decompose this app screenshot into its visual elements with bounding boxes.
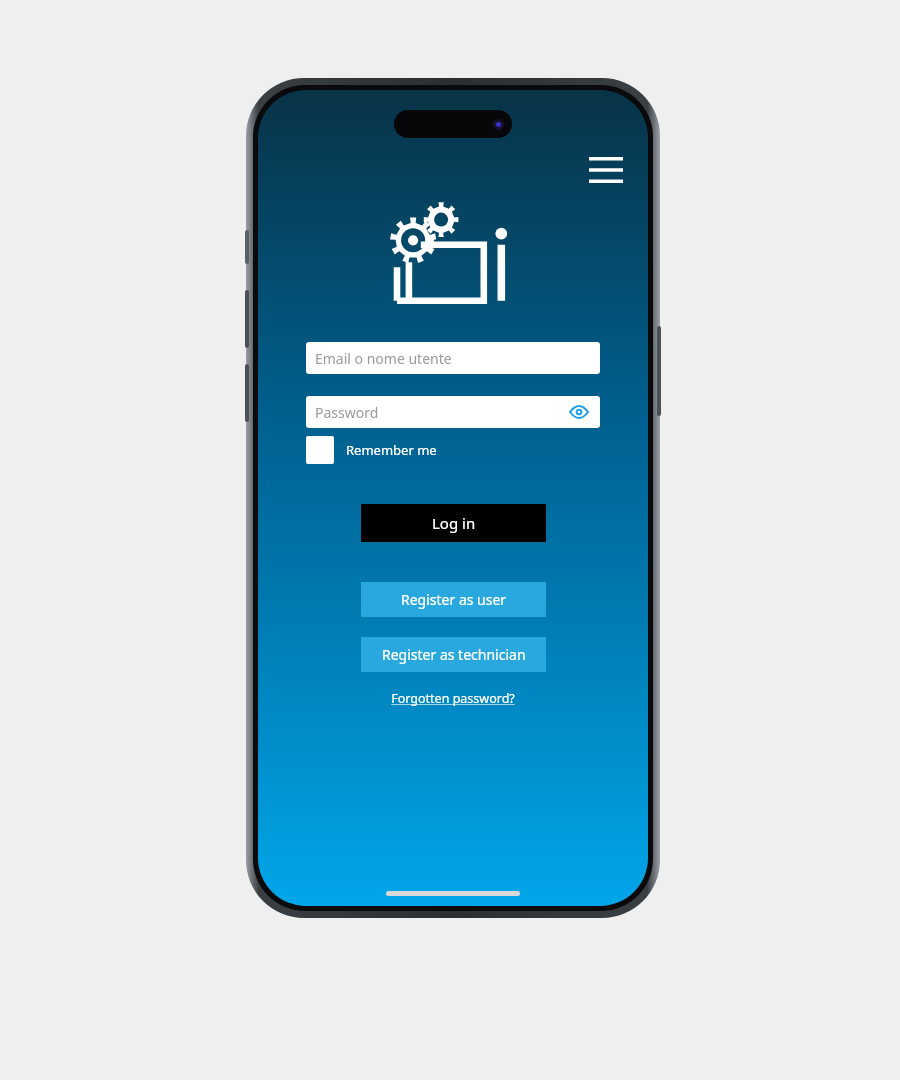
- button[interactable]: Password: [306, 396, 600, 428]
- button[interactable]: Log in: [361, 504, 546, 542]
- staticText: Remember me: [346, 441, 437, 459]
- staticText: Register as technician: [382, 645, 526, 664]
- staticText: Forgotten password?: [391, 690, 515, 707]
- staticText: Log in: [432, 513, 476, 533]
- button[interactable]: Forgotten password?: [385, 686, 521, 711]
- button[interactable]: Menu: [580, 148, 632, 192]
- button[interactable]: Email o nome utente: [306, 342, 600, 374]
- button[interactable]: Show password: [567, 400, 591, 424]
- staticText: Password: [315, 403, 379, 422]
- button[interactable]: Register as technician: [361, 637, 546, 672]
- button[interactable]: Register as user: [361, 582, 546, 617]
- staticText: Register as user: [401, 590, 507, 609]
- button[interactable]: Remember me: [306, 434, 437, 466]
- staticText: Email o nome utente: [315, 349, 452, 368]
